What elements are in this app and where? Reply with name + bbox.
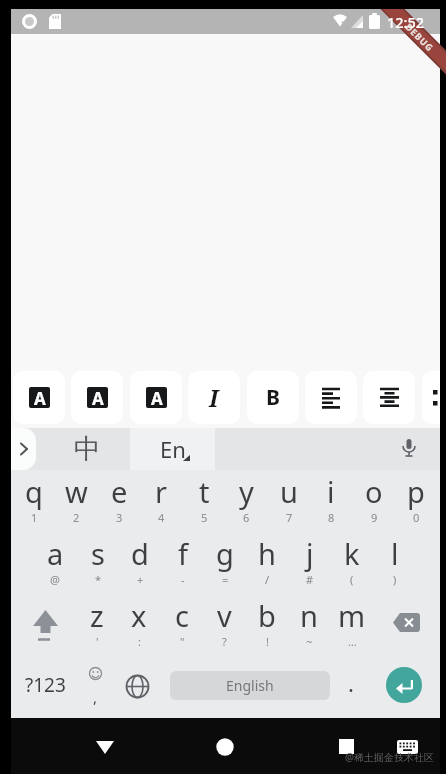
staticText: 0 [413, 510, 420, 525]
staticText: 5 [201, 510, 208, 525]
staticText: w [65, 472, 88, 511]
button[interactable]: ?123 [20, 662, 70, 708]
staticText: v [217, 596, 232, 635]
button[interactable]: I [188, 371, 240, 424]
staticText: " [180, 634, 185, 649]
staticText: English [226, 676, 274, 695]
staticText: , [93, 687, 98, 705]
staticText: s [91, 534, 105, 573]
staticText: z [90, 596, 104, 635]
staticText: h [258, 534, 276, 573]
staticText: 8 [328, 510, 335, 525]
staticText: ! [266, 634, 269, 649]
button[interactable] [386, 600, 430, 646]
staticText: t [199, 472, 210, 511]
staticText: DEBUG [403, 20, 436, 54]
staticText: I [209, 382, 219, 413]
button[interactable] [387, 727, 427, 767]
staticText: ' [96, 634, 99, 649]
staticText: @ [50, 572, 60, 587]
staticText: 中 [74, 432, 101, 466]
staticText: o [365, 472, 383, 511]
staticText: 9 [371, 510, 378, 525]
staticText: A [92, 387, 104, 408]
button[interactable]: A [71, 371, 123, 424]
staticText: n [300, 596, 318, 635]
staticText: p [407, 472, 425, 511]
staticText: i [327, 472, 335, 511]
staticText: ?123 [25, 672, 66, 698]
staticText: a [47, 534, 64, 573]
staticText: + [137, 572, 144, 587]
button[interactable] [422, 371, 446, 424]
button[interactable] [305, 371, 357, 424]
button[interactable] [85, 727, 125, 767]
staticText: # [306, 572, 314, 587]
button[interactable]: English [170, 671, 330, 700]
staticText: d [131, 534, 149, 573]
staticText: 2 [73, 510, 80, 525]
button[interactable] [326, 727, 366, 767]
staticText: / [265, 572, 270, 587]
staticText: 1 [31, 510, 38, 525]
staticText: : [138, 634, 141, 649]
staticText: ) [393, 572, 397, 587]
staticText: … [348, 634, 357, 649]
staticText: ( [350, 572, 354, 587]
staticText: B [266, 383, 280, 412]
button[interactable]: 中 [45, 428, 130, 470]
button[interactable]: En [130, 428, 215, 470]
button[interactable]: B [247, 371, 299, 424]
button[interactable] [11, 428, 36, 470]
staticText: c [175, 596, 189, 635]
staticText: l [391, 534, 399, 573]
button[interactable]: A [13, 371, 65, 424]
button[interactable]: A [130, 371, 182, 424]
button[interactable] [25, 600, 65, 646]
staticText: . [348, 668, 354, 696]
staticText: x [131, 596, 147, 635]
staticText: A [151, 387, 163, 408]
staticText: ? [222, 634, 227, 649]
staticText: ~ [306, 634, 313, 649]
button[interactable] [205, 727, 245, 767]
staticText: 4 [158, 510, 165, 525]
staticText: 12:52 [387, 12, 425, 31]
staticText: En [160, 434, 186, 464]
staticText: A [34, 387, 46, 408]
staticText: j [306, 534, 314, 573]
staticText: g [216, 534, 234, 573]
staticText: = [222, 572, 229, 587]
button[interactable] [386, 667, 422, 703]
staticText: u [280, 472, 298, 511]
staticText: q [25, 472, 43, 511]
staticText: - [181, 572, 185, 587]
staticText: r [155, 472, 167, 511]
staticText: k [344, 534, 360, 573]
staticText: 3 [116, 510, 123, 525]
staticText: b [258, 596, 276, 635]
staticText: * [95, 572, 102, 587]
button[interactable] [363, 371, 415, 424]
staticText: f [178, 534, 188, 573]
staticText: 7 [286, 510, 293, 525]
staticText: 6 [243, 510, 250, 525]
staticText: @稀土掘金技术社区 [345, 750, 434, 764]
staticText: y [239, 472, 254, 511]
staticText: e [111, 472, 128, 511]
staticText: m [338, 596, 366, 635]
